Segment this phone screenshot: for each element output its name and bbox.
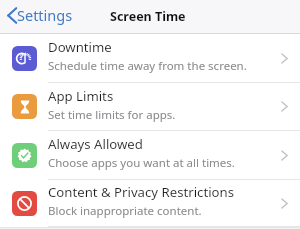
staticText: Content & Privacy Restrictions (48, 183, 234, 201)
staticText: Block inappropriate content. (48, 203, 202, 219)
button[interactable]: Always Allowed (0, 131, 300, 180)
staticText: Screen Time (110, 8, 186, 25)
staticText: App Limits (48, 87, 114, 105)
button[interactable]: Back to Settings (0, 0, 81, 30)
staticText: Downtime (48, 38, 112, 56)
staticText: Choose apps you want at all times. (48, 155, 235, 171)
staticText: Schedule time away from the screen. (48, 58, 247, 74)
button[interactable]: Downtime (0, 34, 300, 83)
staticText: Set time limits for apps. (48, 107, 176, 123)
staticText: Always Allowed (48, 135, 143, 153)
staticText: Settings (17, 5, 73, 25)
button[interactable]: App Limits (0, 83, 300, 131)
button[interactable]: Content & Privacy Restrictions (0, 180, 300, 227)
